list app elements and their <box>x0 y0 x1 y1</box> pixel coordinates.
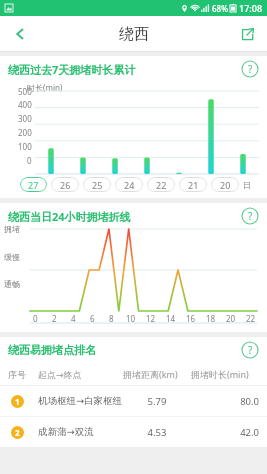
button[interactable]: 27 <box>20 177 47 192</box>
staticText: 1 <box>15 396 20 407</box>
staticText: 25 <box>92 179 103 191</box>
staticText: 拥堵时长(min) <box>191 368 259 380</box>
staticText: 机场枢纽→白家枢纽 <box>38 395 123 407</box>
button[interactable]: 22 <box>147 177 175 192</box>
staticText: 时长(min) <box>27 82 63 93</box>
staticText: 24 <box>124 179 135 191</box>
staticText: 起点→终点 <box>38 369 123 380</box>
staticText: ? <box>248 209 253 223</box>
staticText: 缓慢 <box>4 252 20 262</box>
staticText: 300 <box>18 113 32 124</box>
button[interactable]: 24 <box>115 177 143 192</box>
button[interactable]: 21 <box>179 177 207 192</box>
staticText: 20 <box>226 313 236 324</box>
staticText: 绕西当日24小时拥堵折线 <box>8 209 131 224</box>
staticText: 2 <box>15 427 20 438</box>
staticText: 20 <box>220 179 231 191</box>
staticText: 4 <box>71 313 76 324</box>
staticText: 68% <box>212 3 228 14</box>
staticText: 6 <box>90 313 95 324</box>
button[interactable]: Help <box>241 60 259 78</box>
staticText: 通畅 <box>4 279 20 289</box>
staticText: 18 <box>206 313 216 324</box>
staticText: 100 <box>18 141 32 152</box>
staticText: 绕西 <box>119 25 149 44</box>
staticText: 日 <box>243 180 251 190</box>
staticText: 拥堵距离(km) <box>123 368 191 380</box>
staticText: 21 <box>188 179 199 191</box>
staticText: 0 <box>33 313 38 324</box>
staticText: 成新蒲→双流 <box>38 426 123 438</box>
staticText: 80.0 <box>191 395 259 408</box>
staticText: 0 <box>27 155 32 166</box>
staticText: 400 <box>18 99 32 110</box>
staticText: 22 <box>156 179 167 191</box>
staticText: 16 <box>186 313 196 324</box>
staticText: 8 <box>109 313 114 324</box>
staticText: 拥堵 <box>4 224 20 234</box>
staticText: 14 <box>166 313 176 324</box>
staticText: ? <box>248 62 253 76</box>
button[interactable]: 1 <box>0 386 267 416</box>
staticText: 2 <box>52 313 57 324</box>
button[interactable]: Help <box>241 207 259 225</box>
staticText: 17:08 <box>239 2 263 14</box>
staticText: 4.53 <box>123 426 191 439</box>
button[interactable]: Back <box>0 16 40 52</box>
staticText: 12 <box>146 313 156 324</box>
staticText: 27 <box>28 179 39 191</box>
staticText: 500 <box>18 86 32 97</box>
staticText: 22 <box>246 313 256 324</box>
button[interactable]: 2 <box>0 417 267 447</box>
staticText: 42.0 <box>191 426 259 439</box>
button[interactable]: Help <box>241 341 259 359</box>
button[interactable]: Share <box>227 16 267 52</box>
button[interactable]: 25 <box>83 177 111 192</box>
staticText: ? <box>248 343 253 357</box>
staticText: 序号 <box>8 369 38 380</box>
staticText: 绕西过去7天拥堵时长累计 <box>8 62 136 77</box>
staticText: 10 <box>126 313 136 324</box>
staticText: 26 <box>60 179 71 191</box>
button[interactable]: 20 <box>211 177 239 192</box>
staticText: 200 <box>18 127 32 138</box>
staticText: 绕西易拥堵点排名 <box>8 343 96 357</box>
staticText: 5.79 <box>123 395 191 408</box>
button[interactable]: 26 <box>51 177 79 192</box>
